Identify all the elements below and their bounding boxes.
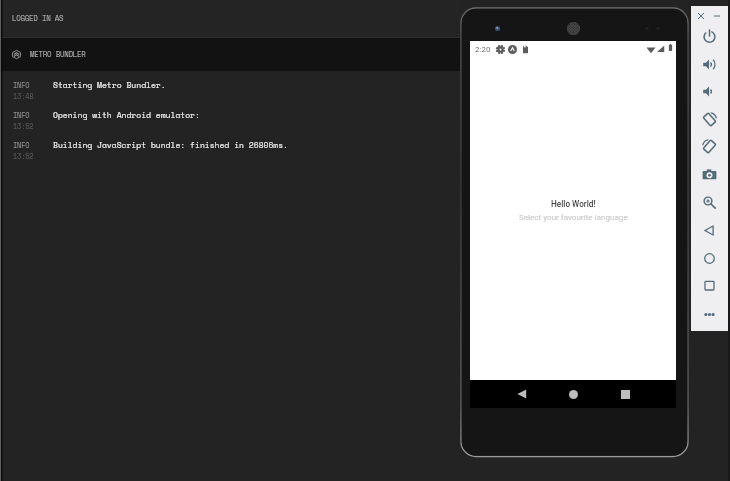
button[interactable]: Minimize [709,8,725,24]
staticText: 13:52 [13,151,34,161]
staticText: Hello World! [551,199,596,209]
staticText: LOGGED IN AS [12,13,64,24]
button[interactable]: Rotate right [698,135,720,157]
staticText: 13:52 [13,121,34,131]
button[interactable]: Rotate left [698,108,720,130]
staticText: Building JavaScript bundle: finished in … [53,139,289,151]
button[interactable]: Volume up [698,53,720,75]
button[interactable]: METRO BUNDLER [0,38,460,71]
staticText: Opening with Android emulator: [53,109,200,121]
button[interactable]: INFO [0,76,460,106]
button[interactable]: INFO [0,106,460,136]
button[interactable]: Close [693,8,709,24]
button[interactable]: Power [698,25,720,47]
staticText: INFO [13,110,30,120]
button[interactable]: Zoom [698,191,720,213]
button[interactable]: Back [499,380,544,408]
staticText: Select your favourite language [519,212,628,221]
staticText: 2:20 [475,45,491,54]
button[interactable]: INFO [0,136,460,166]
button[interactable]: More [698,303,720,325]
button[interactable]: Home [551,380,596,408]
button[interactable]: Volume down [698,80,720,102]
staticText: INFO [13,140,30,150]
staticText: 13:48 [13,91,34,101]
button[interactable]: Take screenshot [698,163,720,185]
button[interactable]: Home [698,247,720,269]
button[interactable]: Overview [698,274,720,296]
button[interactable]: Back [698,219,720,241]
staticText: INFO [13,80,30,90]
button[interactable]: Recent apps [603,380,648,408]
staticText: Starting Metro Bundler. [53,79,166,91]
staticText: METRO BUNDLER [30,49,86,60]
